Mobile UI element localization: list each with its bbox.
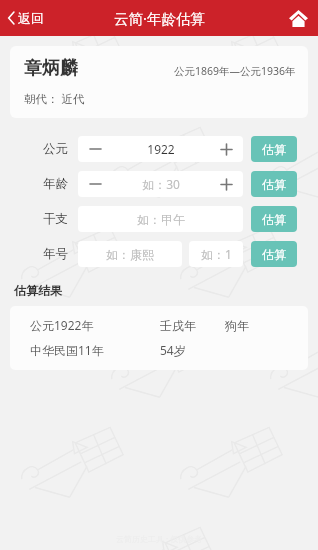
staticText: 壬戌年: [160, 318, 196, 333]
staticText: 估算: [262, 212, 286, 227]
button[interactable]: Home: [279, 4, 318, 33]
button[interactable]: 返回: [0, 4, 54, 32]
staticText: 估算: [262, 247, 286, 262]
staticText: 如：30: [142, 176, 180, 192]
staticText: 云简·年龄估算: [114, 8, 205, 28]
staticText: 章炳麟: [24, 57, 78, 80]
staticText: 年号: [43, 246, 68, 262]
staticText: 估算: [262, 177, 286, 192]
button[interactable]: 章炳麟: [10, 46, 308, 118]
button[interactable]: Increase: [209, 136, 243, 162]
staticText: 54岁: [160, 342, 186, 358]
staticText: 干支: [43, 211, 68, 227]
button[interactable]: Decrease: [78, 136, 112, 162]
button[interactable]: 如：1: [189, 241, 243, 267]
button[interactable]: 估算: [251, 241, 297, 267]
staticText: 如：康熙: [106, 247, 154, 262]
staticText: 年龄: [43, 176, 68, 192]
staticText: 如：甲午: [137, 212, 185, 227]
staticText: 朝代： 近代: [24, 91, 85, 107]
staticText: 估算结果: [14, 283, 62, 298]
staticText: 公元1869年—公元1936年: [174, 64, 296, 78]
staticText: 1922: [147, 141, 175, 157]
button[interactable]: 估算: [251, 206, 297, 232]
button[interactable]: 估算: [251, 171, 297, 197]
staticText: 估算: [262, 142, 286, 157]
staticText: 公元1922年: [30, 317, 94, 333]
staticText: 如：1: [201, 246, 232, 262]
button[interactable]: 如：甲午: [78, 206, 243, 232]
button[interactable]: Increase: [209, 171, 243, 197]
button[interactable]: 估算: [251, 136, 297, 162]
button[interactable]: 公元1922年: [10, 306, 308, 370]
staticText: 中华民国11年: [30, 342, 104, 358]
staticText: 返回: [18, 10, 44, 26]
staticText: 公元: [43, 141, 68, 157]
staticText: 狗年: [225, 318, 249, 333]
button[interactable]: Decrease: [78, 171, 112, 197]
button[interactable]: 如：康熙: [78, 241, 182, 267]
